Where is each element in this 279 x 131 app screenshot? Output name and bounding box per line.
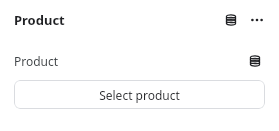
button[interactable]: Select product [14,80,265,109]
button[interactable]: Data source [221,10,241,30]
staticText: Product [14,11,65,29]
staticText: Select product [99,87,180,103]
button[interactable]: More options [247,10,267,30]
staticText: Product [14,53,59,69]
button[interactable]: Data source [245,51,265,71]
